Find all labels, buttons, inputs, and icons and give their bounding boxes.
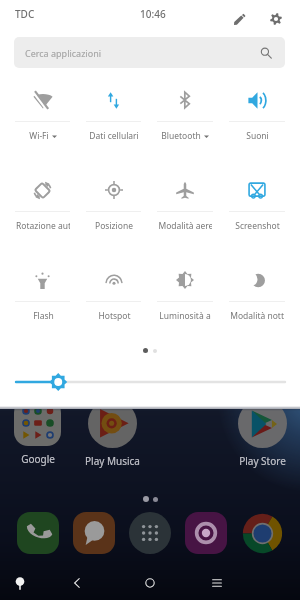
button[interactable]: Modalità notte xyxy=(221,257,293,347)
button[interactable]: Rotazione aut xyxy=(7,167,78,257)
staticText: Suoni xyxy=(246,130,269,142)
staticText: Posizione xyxy=(95,220,133,232)
button[interactable]: Dati cellulari xyxy=(78,77,149,167)
button[interactable]: Messages xyxy=(73,512,115,554)
button[interactable]: All apps xyxy=(129,512,171,554)
button[interactable]: Play Musica xyxy=(75,399,150,468)
button[interactable]: Hide keyboard xyxy=(8,571,32,595)
button[interactable]: Chrome xyxy=(241,512,283,554)
button[interactable]: Home xyxy=(138,571,162,595)
staticText: Wi-Fi xyxy=(29,130,49,142)
button[interactable]: Camera xyxy=(185,512,227,554)
button[interactable]: Wi-Fi xyxy=(7,77,78,167)
staticText: Dati cellulari xyxy=(89,130,139,142)
staticText: Flash xyxy=(33,310,54,322)
staticText: Luminosità a xyxy=(159,310,211,322)
button[interactable]: Edit xyxy=(227,6,252,31)
staticText: Cerca applicazioni xyxy=(25,47,102,59)
staticText: Modalità notte xyxy=(230,310,284,322)
button[interactable]: Phone xyxy=(17,512,59,554)
button[interactable]: Google xyxy=(0,399,75,466)
button[interactable]: Suoni xyxy=(221,77,293,167)
button[interactable]: Posizione xyxy=(78,167,149,257)
staticText: Google xyxy=(21,452,55,466)
staticText: Modalità aereo xyxy=(158,220,212,232)
button[interactable]: Cerca applicazioni xyxy=(14,37,285,68)
staticText: 10:46 xyxy=(140,7,166,21)
button[interactable]: Play Store xyxy=(225,399,300,468)
button[interactable]: Luminosità a xyxy=(149,257,221,347)
staticText: Screenshot xyxy=(235,220,280,232)
staticText: Hotspot xyxy=(98,310,131,322)
staticText: Play Musica xyxy=(85,454,140,468)
staticText: Play Store xyxy=(239,454,286,468)
button[interactable]: Back xyxy=(65,571,89,595)
staticText: TDC xyxy=(15,7,35,21)
staticText: Rotazione aut xyxy=(16,220,70,232)
button[interactable]: Screenshot xyxy=(221,167,293,257)
button[interactable]: Bluetooth xyxy=(149,77,221,167)
staticText: Bluetooth xyxy=(161,130,201,142)
button[interactable]: Hotspot xyxy=(78,257,149,347)
button[interactable]: Recent apps xyxy=(205,571,229,595)
button[interactable]: Settings xyxy=(263,6,288,31)
button[interactable]: Flash xyxy=(7,257,78,347)
button[interactable]: Modalità aereo xyxy=(149,167,221,257)
